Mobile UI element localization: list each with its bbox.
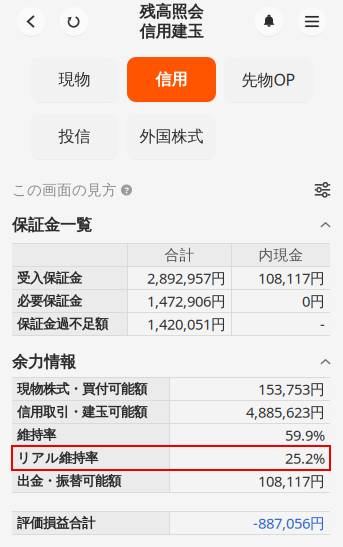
staticText: -887,056円 — [253, 513, 325, 533]
staticText: リアル維持率 — [17, 450, 98, 466]
staticText: 59.9% — [285, 425, 325, 445]
staticText: 維持率 — [17, 427, 56, 443]
button[interactable]: 現物 — [30, 55, 119, 104]
staticText: 信用取引・建玉可能額 — [17, 404, 147, 420]
staticText: 出金・振替可能額 — [17, 473, 121, 489]
staticText: 必要保証金 — [17, 293, 82, 309]
staticText: 外国株式 — [139, 127, 203, 146]
staticText: 投信 — [58, 127, 90, 146]
button[interactable]: Display settings — [314, 183, 331, 197]
staticText: 保証金過不足額 — [17, 316, 108, 332]
button[interactable]: 余力情報 — [12, 354, 331, 370]
staticText: 信用建玉 — [139, 21, 203, 41]
staticText: 信用 — [155, 70, 187, 89]
staticText: 内現金 — [258, 246, 303, 264]
button[interactable]: Back — [16, 5, 46, 38]
staticText: 合計 — [164, 246, 194, 264]
staticText: 0円 — [302, 291, 325, 311]
staticText: 受入保証金 — [17, 270, 82, 286]
staticText: 2,892,957円 — [147, 268, 226, 288]
staticText: 153,753円 — [258, 379, 325, 399]
button[interactable]: 投信 — [30, 112, 119, 161]
staticText: 保証金一覧 — [12, 215, 92, 235]
staticText: 評価損益合計 — [17, 515, 95, 531]
button[interactable]: 信用 — [127, 55, 216, 104]
staticText: 1,472,906円 — [147, 291, 226, 311]
button[interactable]: Menu — [297, 5, 327, 38]
staticText: - — [320, 314, 325, 334]
staticText: 1,420,051円 — [147, 314, 226, 334]
staticText: 現物 — [58, 70, 90, 89]
staticText: この画面の見方 — [12, 181, 117, 199]
staticText: 現物株式・買付可能額 — [17, 381, 147, 397]
staticText: 108,117円 — [258, 471, 325, 491]
button[interactable]: Notifications — [254, 5, 284, 38]
staticText: 25.2% — [285, 448, 325, 468]
staticText: 残高照会 — [139, 2, 203, 21]
button[interactable]: Refresh — [59, 5, 89, 38]
staticText: 余力情報 — [12, 352, 76, 372]
button[interactable]: 保証金一覧 — [12, 217, 331, 233]
button[interactable]: 先物OP — [224, 55, 313, 104]
staticText: 4,885,623円 — [246, 402, 325, 422]
staticText: 先物OP — [241, 69, 295, 90]
button[interactable]: この画面の見方 — [12, 182, 132, 198]
staticText: 108,117円 — [258, 268, 325, 288]
button[interactable]: 外国株式 — [127, 112, 216, 161]
staticText: ? — [124, 184, 128, 196]
